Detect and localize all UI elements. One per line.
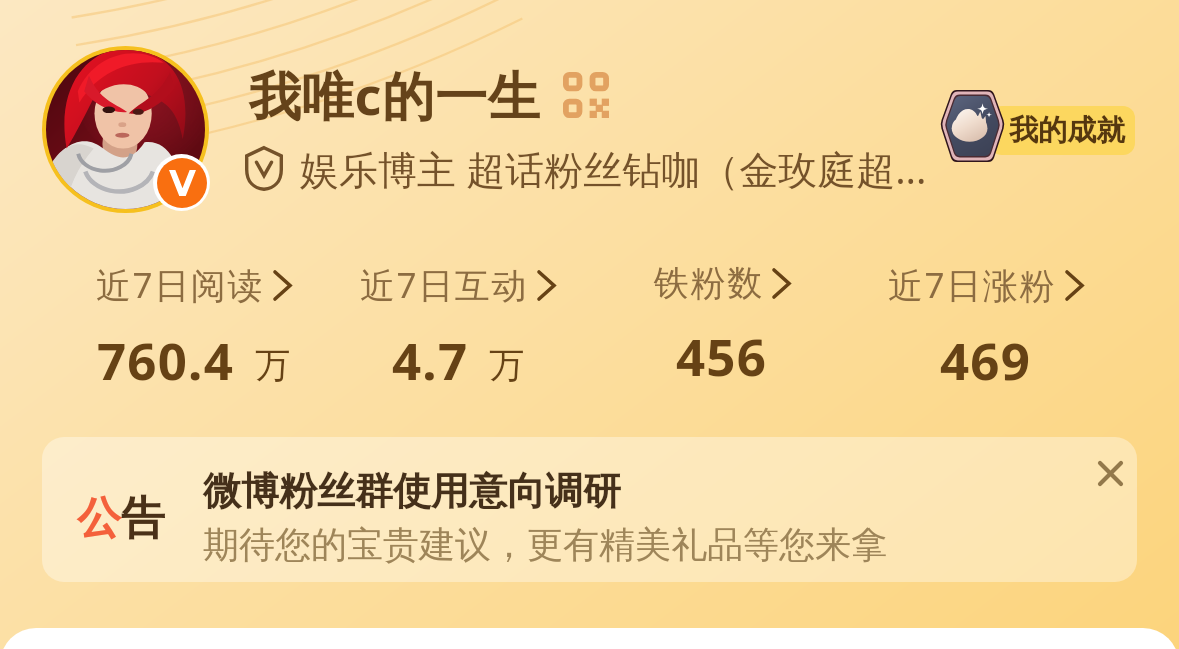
staticText: 469	[940, 325, 1032, 394]
staticText: 近7日涨粉	[888, 261, 1057, 309]
other: Verified account	[153, 154, 210, 211]
button[interactable]: 公	[42, 437, 1137, 582]
button[interactable]: Close	[1075, 437, 1137, 499]
staticText: 告	[121, 491, 165, 546]
button[interactable]: 近7日互动	[326, 261, 590, 394]
staticText: 铁粉数	[654, 261, 764, 305]
staticText: 公	[77, 491, 121, 546]
staticText: 近7日互动	[360, 261, 529, 309]
button[interactable]: 近7日阅读	[61, 261, 326, 394]
staticText: 微博粉丝群使用意向调研	[203, 467, 621, 515]
staticText: 我唯c的一生	[249, 59, 541, 130]
button[interactable]: 我的成就	[941, 90, 1086, 162]
staticText: 456	[676, 321, 768, 390]
staticText: 760.4	[97, 325, 235, 394]
button[interactable]: 铁粉数	[590, 261, 854, 390]
staticText: 万	[255, 343, 290, 387]
staticText: 近7日阅读	[96, 261, 265, 309]
staticText: 万	[489, 343, 524, 387]
button[interactable]: QR code	[563, 72, 609, 118]
button[interactable]: 近7日涨粉	[854, 261, 1118, 394]
staticText: 期待您的宝贵建议，更有精美礼品等您来拿	[203, 522, 887, 567]
staticText: 娱乐博主 超话粉丝钻咖（金玫庭超...	[300, 142, 927, 195]
staticText: 我的成就	[1009, 112, 1125, 149]
staticText: 4.7	[392, 325, 469, 394]
